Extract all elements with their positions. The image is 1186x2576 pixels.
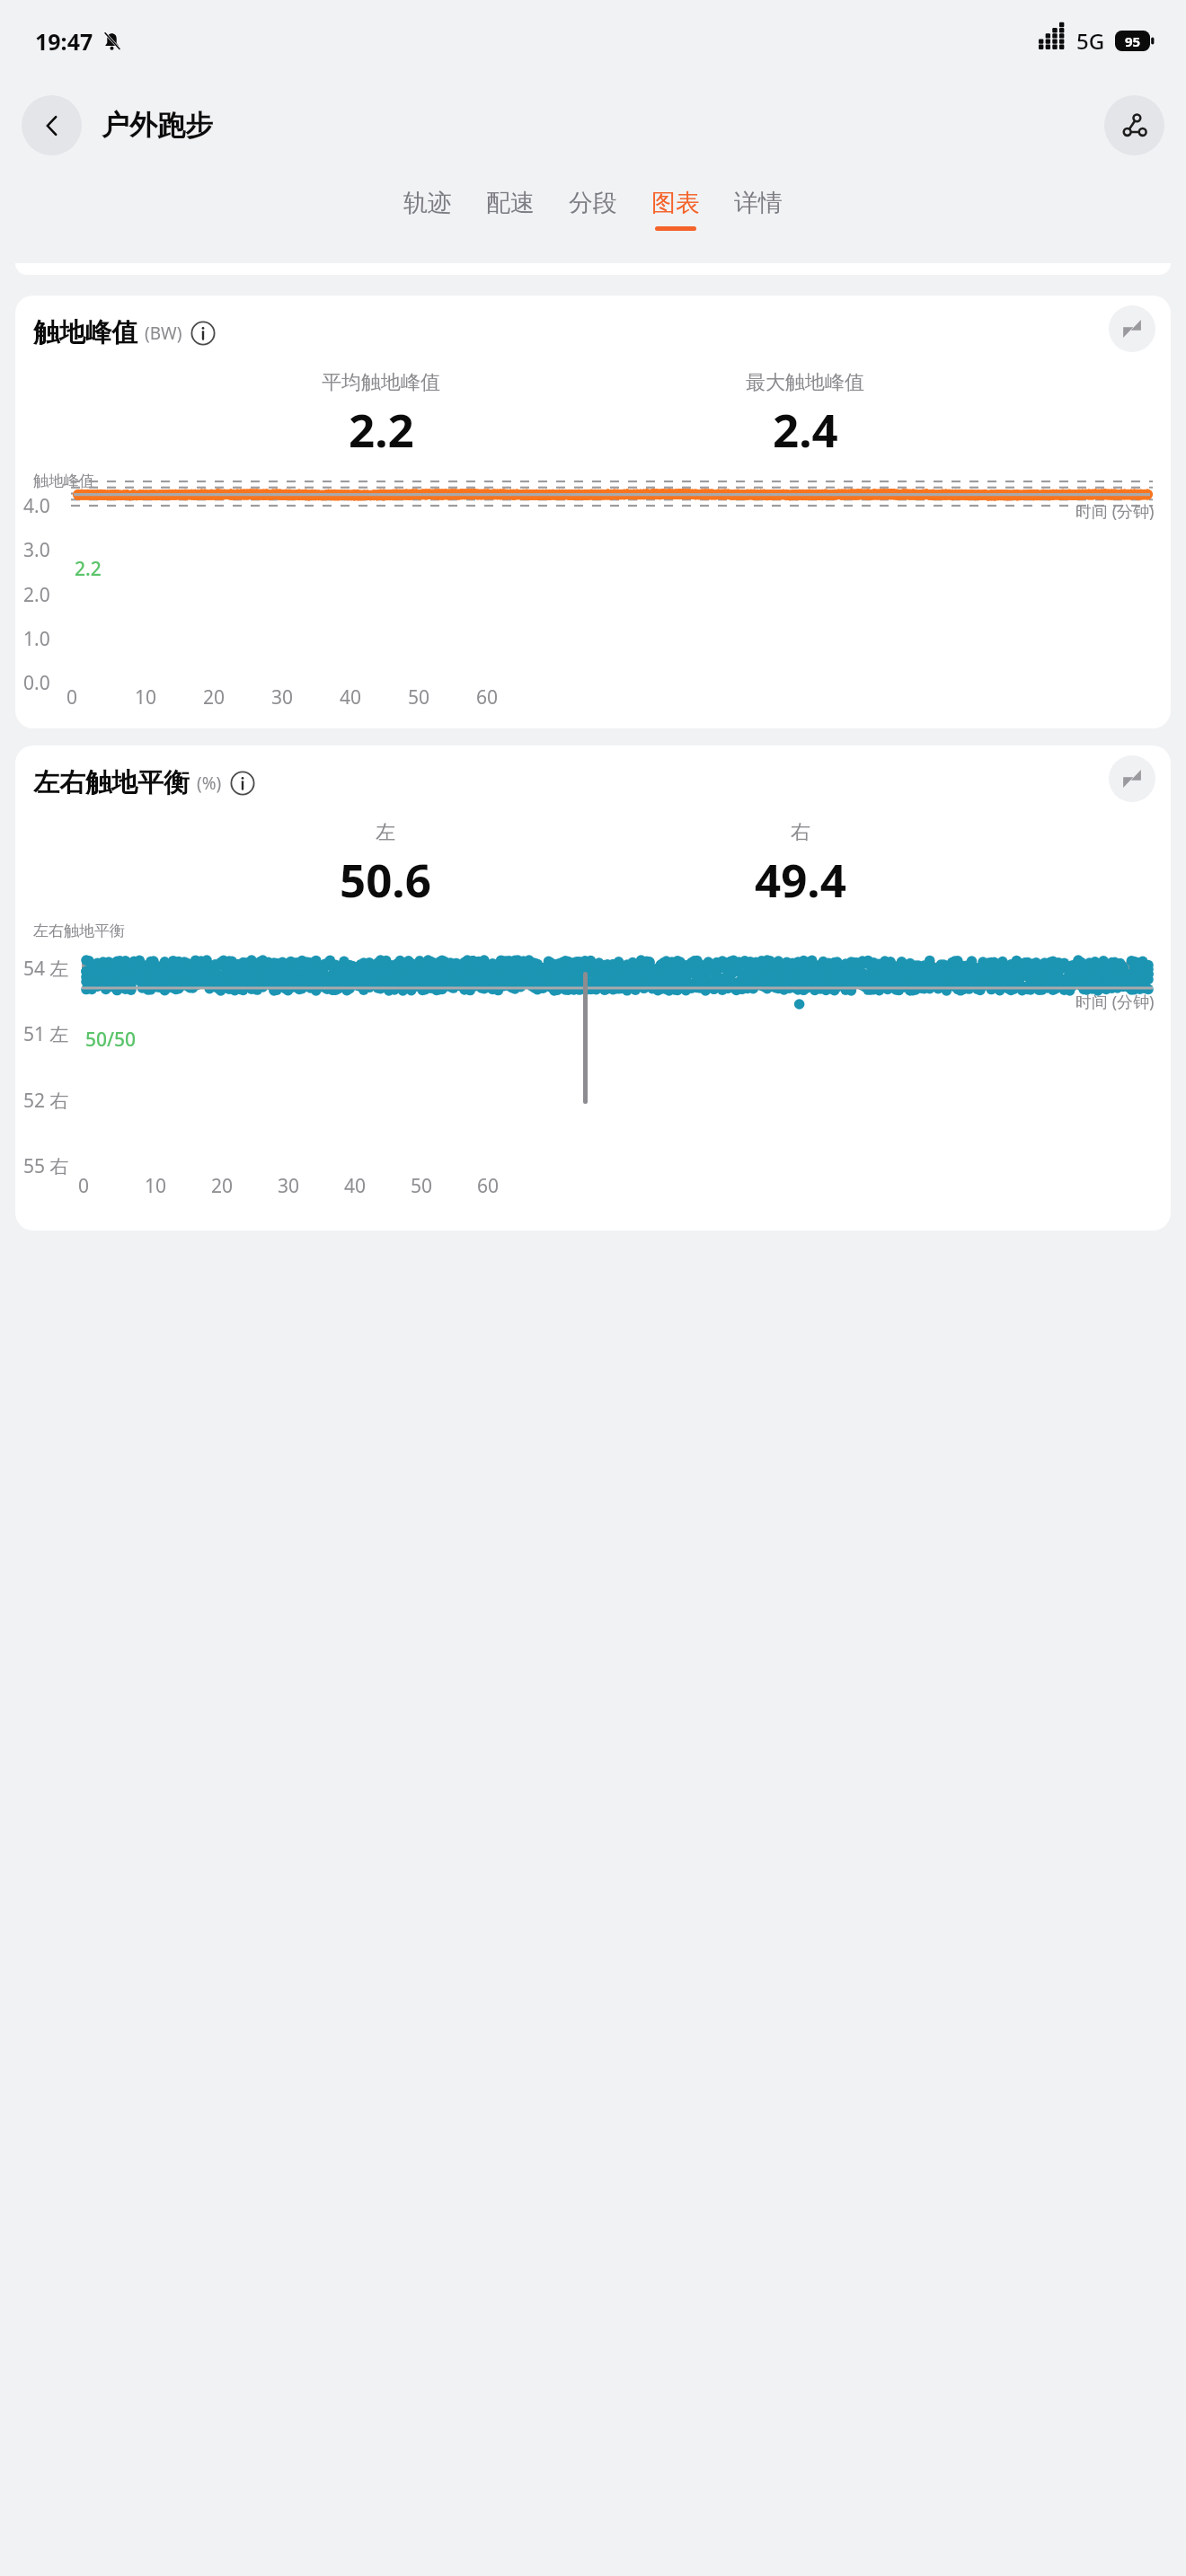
staticText: 40 bbox=[344, 1173, 367, 1199]
staticText: 配速 bbox=[486, 188, 535, 218]
staticText: 0 bbox=[78, 1173, 90, 1199]
button[interactable]: 图表 bbox=[634, 168, 717, 234]
staticText: 最大触地峰值 bbox=[746, 370, 864, 395]
staticText: 5G bbox=[1076, 26, 1105, 56]
staticText: 详情 bbox=[734, 188, 783, 218]
button[interactable]: 触地峰值 bbox=[15, 296, 1171, 728]
staticText: 51 左 bbox=[23, 1021, 69, 1047]
staticText: 50 bbox=[408, 684, 430, 710]
button[interactable]: 配速 bbox=[469, 168, 552, 234]
staticText: 10 bbox=[145, 1173, 167, 1199]
staticText: 20 bbox=[211, 1173, 234, 1199]
staticText: 52 右 bbox=[23, 1088, 69, 1114]
staticText: 30 bbox=[271, 684, 294, 710]
staticText: 时间 (分钟) bbox=[1075, 500, 1155, 523]
staticText: 0 bbox=[66, 684, 78, 710]
staticText: 平均触地峰值 bbox=[322, 370, 440, 395]
staticText: 55 右 bbox=[23, 1153, 69, 1179]
staticText: 左右触地平衡 bbox=[33, 922, 125, 940]
staticText: 图表 bbox=[651, 188, 700, 218]
staticText: (BW) bbox=[145, 322, 182, 345]
staticText: 20 bbox=[203, 684, 226, 710]
staticText: 触地峰值 bbox=[33, 472, 94, 490]
staticText: 左右触地平衡 bbox=[33, 766, 190, 799]
staticText: 右 bbox=[791, 820, 810, 845]
staticText: 40 bbox=[340, 684, 362, 710]
staticText: 2.0 bbox=[23, 582, 50, 608]
staticText: 2.2 bbox=[75, 556, 102, 582]
staticText: 50/50 bbox=[85, 1027, 137, 1053]
button[interactable]: Back bbox=[22, 95, 82, 155]
staticText: 分段 bbox=[569, 188, 617, 218]
staticText: 轨迹 bbox=[403, 188, 452, 218]
button[interactable]: Info bbox=[190, 321, 216, 346]
button[interactable]: 分段 bbox=[552, 168, 634, 234]
button[interactable]: 左右触地平衡 bbox=[15, 745, 1171, 1231]
button[interactable]: Share bbox=[1104, 95, 1164, 155]
staticText: 0.0 bbox=[23, 670, 50, 696]
button[interactable]: Expand chart bbox=[1109, 305, 1155, 352]
button[interactable]: Info bbox=[230, 771, 255, 796]
staticText: 30 bbox=[278, 1173, 300, 1199]
staticText: 左 bbox=[376, 820, 395, 845]
staticText: 50.6 bbox=[340, 848, 431, 910]
staticText: 60 bbox=[476, 684, 499, 710]
staticText: 10 bbox=[135, 684, 157, 710]
staticText: 2.2 bbox=[349, 398, 414, 460]
staticText: 19:47 bbox=[35, 26, 93, 57]
staticText: 户外跑步 bbox=[102, 108, 213, 143]
button[interactable]: 详情 bbox=[717, 168, 800, 234]
staticText: 49.4 bbox=[755, 848, 846, 910]
staticText: (%) bbox=[197, 772, 222, 795]
staticText: 54 左 bbox=[23, 956, 69, 982]
staticText: 2.4 bbox=[773, 398, 838, 460]
staticText: 3.0 bbox=[23, 537, 50, 563]
staticText: 时间 (分钟) bbox=[1075, 991, 1155, 1013]
staticText: 50 bbox=[411, 1173, 433, 1199]
staticText: 1.0 bbox=[23, 626, 50, 652]
staticText: 95 bbox=[1125, 32, 1141, 50]
button[interactable]: Expand chart bbox=[1109, 755, 1155, 802]
staticText: 60 bbox=[477, 1173, 500, 1199]
button[interactable]: 轨迹 bbox=[386, 168, 469, 234]
staticText: 4.0 bbox=[23, 493, 50, 519]
staticText: 触地峰值 bbox=[33, 316, 137, 349]
